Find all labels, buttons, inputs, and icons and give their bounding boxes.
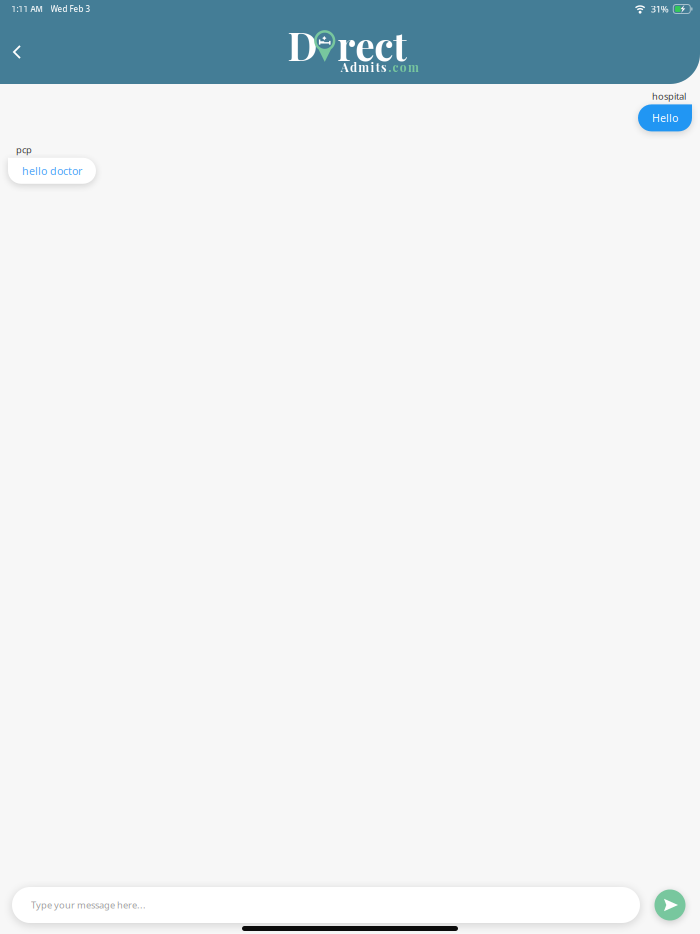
button[interactable]: Type your message here... — [12, 887, 640, 923]
staticText: 31% — [651, 3, 669, 15]
staticText: hospital — [652, 90, 686, 102]
staticText: Hello — [652, 111, 678, 125]
staticText: hello doctor — [22, 164, 82, 178]
staticText: rect — [337, 19, 407, 71]
staticText: o — [400, 59, 407, 75]
button[interactable]: Send — [654, 889, 685, 920]
button[interactable]: Back — [2, 32, 32, 72]
staticText: c — [392, 59, 398, 75]
staticText: m — [358, 59, 369, 75]
staticText: t — [376, 59, 380, 75]
staticText: A — [341, 59, 349, 75]
staticText: m — [408, 59, 419, 75]
staticText: s — [381, 59, 387, 75]
staticText: D — [287, 19, 317, 71]
staticText: Type your message here... — [31, 899, 146, 911]
staticText: d — [350, 59, 357, 75]
staticText: i — [370, 59, 374, 75]
staticText: . — [388, 59, 391, 75]
staticText: Wed Feb 3 — [50, 4, 90, 14]
staticText: 1:11 AM — [11, 4, 42, 14]
staticText: pcp — [16, 143, 32, 156]
